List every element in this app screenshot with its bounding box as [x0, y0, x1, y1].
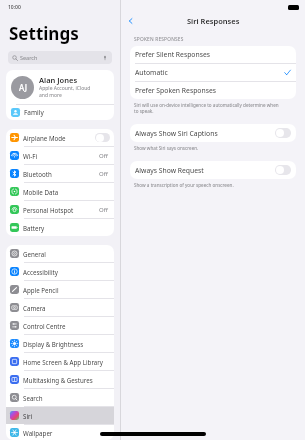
staticText: to speak. [134, 108, 154, 114]
staticText: Family [24, 108, 44, 117]
button[interactable]: Multitasking & Gestures [6, 371, 114, 388]
staticText: Search [20, 54, 38, 61]
button[interactable]: Automatic [130, 64, 296, 81]
staticText: General [23, 250, 46, 258]
staticText: Airplane Mode [23, 134, 66, 142]
button[interactable]: General [6, 245, 114, 262]
button[interactable]: Search [6, 389, 114, 406]
staticText: Multitasking & Gestures [23, 376, 93, 384]
staticText: Off [99, 170, 108, 178]
button[interactable]: Always Show Siri Captions [130, 124, 296, 142]
staticText: Accessibility [23, 268, 58, 276]
button[interactable]: Prefer Spoken Responses [130, 82, 296, 99]
button[interactable]: Home Screen & App Library [6, 353, 114, 370]
staticText: Prefer Spoken Responses [135, 86, 216, 95]
staticText: Always Show Request [135, 166, 204, 175]
staticText: Display & Brightness [23, 340, 84, 348]
staticText: Always Show Siri Captions [135, 129, 218, 138]
staticText: Automatic [135, 68, 168, 77]
staticText: Battery [23, 224, 45, 232]
button[interactable]: Accessibility [6, 263, 114, 280]
staticText: Siri [23, 412, 33, 420]
staticText: Prefer Silent Responses [135, 50, 211, 59]
button[interactable]: Prefer Silent Responses [130, 46, 296, 63]
staticText: and more [39, 92, 62, 99]
staticText: Wallpaper [23, 429, 53, 437]
staticText: AJ [19, 82, 27, 93]
staticText: Mobile Data [23, 188, 59, 196]
button[interactable]: Apple Pencil [6, 281, 114, 298]
staticText: SPOKEN RESPONSES [134, 36, 184, 43]
staticText: Camera [23, 304, 46, 312]
button[interactable]: Wallpaper [6, 425, 114, 440]
staticText: Home Screen & App Library [23, 358, 103, 366]
staticText: Off [99, 152, 108, 160]
button[interactable]: Family [6, 105, 114, 120]
button[interactable]: Airplane Mode [6, 129, 114, 146]
button[interactable]: Search [8, 51, 112, 64]
button[interactable]: Control Centre [6, 317, 114, 334]
staticText: Wi-Fi [23, 152, 38, 160]
button[interactable]: Siri [6, 407, 114, 424]
staticText: Show what Siri says onscreen. [134, 145, 199, 151]
button[interactable]: Wi-Fi [6, 147, 114, 164]
button[interactable]: Mobile Data [6, 183, 114, 200]
staticText: Apple Pencil [23, 286, 59, 294]
staticText: Bluetooth [23, 170, 52, 178]
button[interactable] [95, 133, 110, 142]
staticText: Settings [9, 22, 79, 45]
staticText: Search [23, 394, 43, 402]
button[interactable]: Display & Brightness [6, 335, 114, 352]
button[interactable]: Always Show Siri Captions [275, 128, 291, 138]
staticText: Off [99, 206, 108, 214]
staticText: Control Centre [23, 322, 66, 330]
button[interactable]: Back [124, 14, 138, 28]
staticText: Personal Hotspot [23, 206, 74, 214]
button[interactable]: Camera [6, 299, 114, 316]
staticText: Siri Responses [187, 16, 240, 26]
button[interactable]: Bluetooth [6, 165, 114, 182]
staticText: 10:00 [8, 4, 21, 11]
staticText: Show a transcription of your speech onsc… [134, 182, 234, 188]
button[interactable]: AJ [6, 70, 114, 104]
button[interactable]: Personal Hotspot [6, 201, 114, 218]
button[interactable]: Always Show Request [130, 161, 296, 179]
staticText: Apple Account, iCloud [39, 85, 91, 92]
staticText: Alan Jones [39, 75, 78, 85]
button[interactable]: Always Show Request [275, 165, 291, 175]
staticText: Siri will use on-device intelligence to … [134, 102, 279, 108]
button[interactable]: Battery [6, 219, 114, 236]
